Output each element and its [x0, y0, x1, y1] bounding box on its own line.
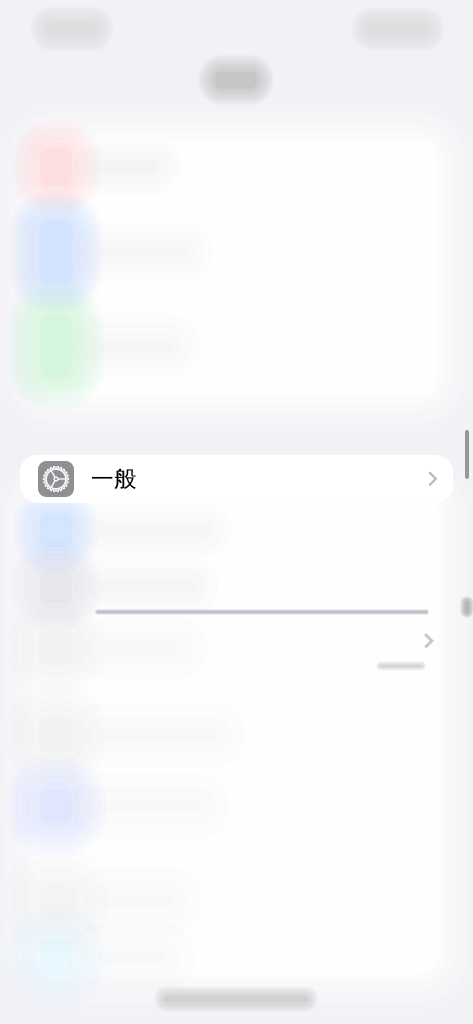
staticText: 一般 [91, 465, 137, 493]
button[interactable]: 一般 [20, 455, 453, 503]
